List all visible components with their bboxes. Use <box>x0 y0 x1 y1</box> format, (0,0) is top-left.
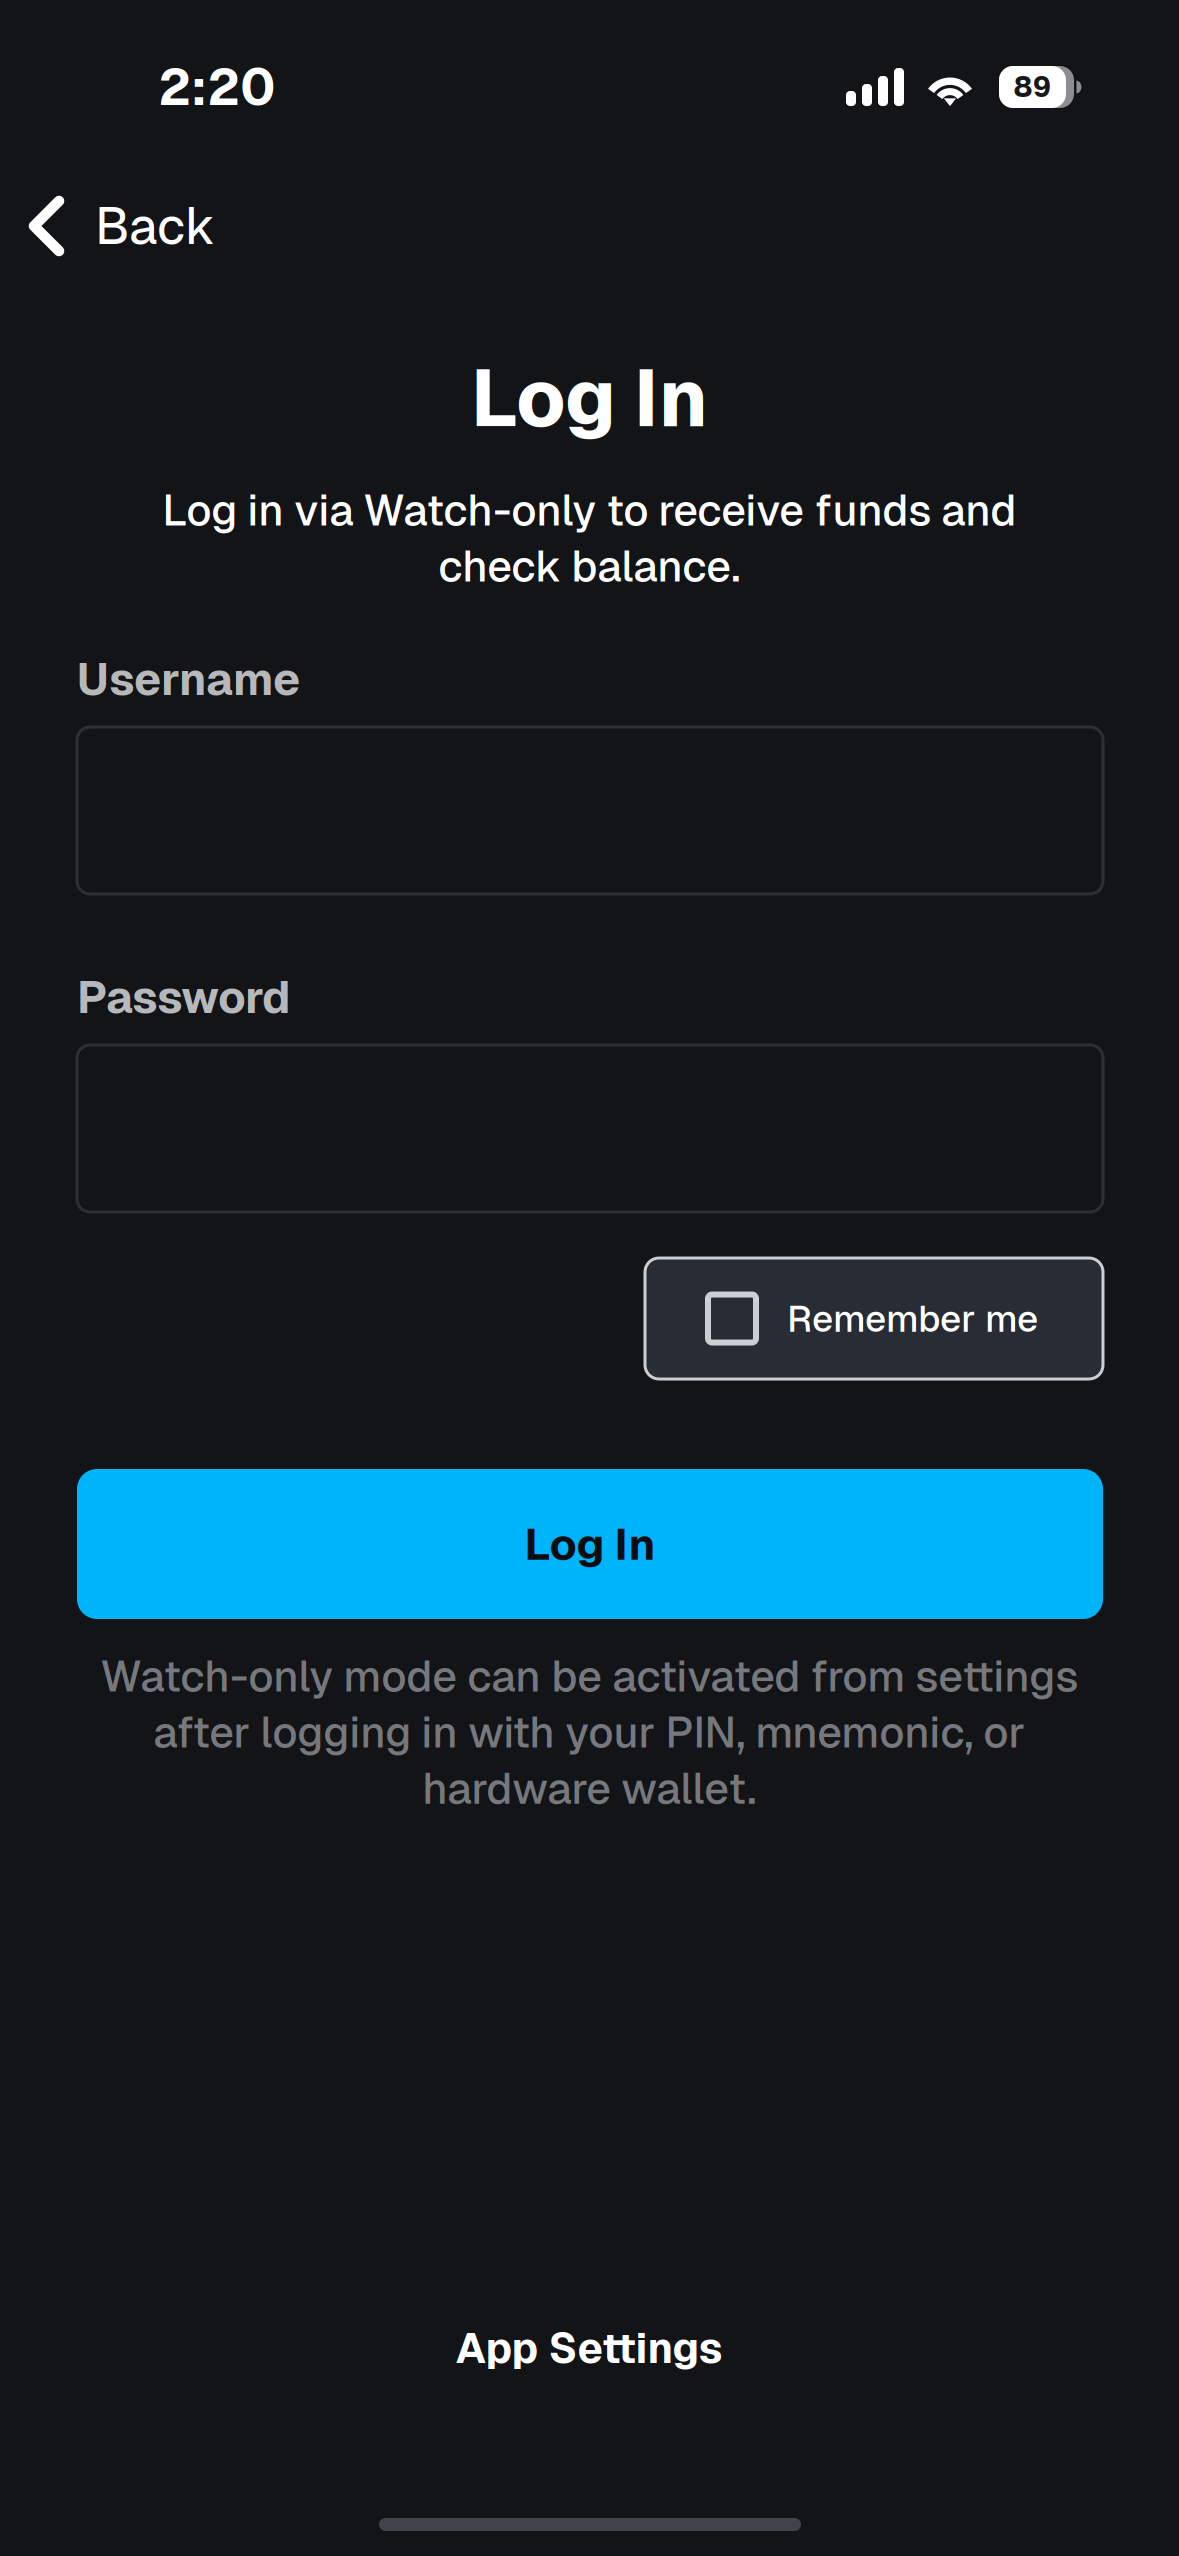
staticText: Password <box>77 968 291 1026</box>
button[interactable]: Log In <box>77 1469 1103 1619</box>
button[interactable]: Remember me <box>645 1258 1103 1379</box>
staticText: Log In <box>524 1515 655 1573</box>
staticText: 89 <box>1013 69 1051 105</box>
staticText: App Settings <box>455 2321 722 2375</box>
staticText: Username <box>77 650 300 708</box>
staticText: Log in via Watch-only to receive funds a… <box>162 482 1016 594</box>
staticText: Remember me <box>787 1294 1038 1343</box>
staticText: Back <box>95 193 215 259</box>
button[interactable]: App Settings <box>389 2308 789 2388</box>
staticText: Log In <box>471 346 708 450</box>
staticText: Watch-only mode can be activated from se… <box>100 1648 1078 1816</box>
button[interactable]: Back <box>0 178 320 274</box>
staticText: 2:20 <box>158 54 276 120</box>
